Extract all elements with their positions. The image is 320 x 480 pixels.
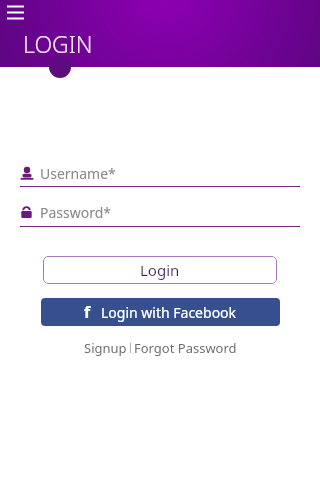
staticText: Forgot Password [134, 339, 237, 357]
staticText: f [84, 301, 91, 323]
button[interactable]: Menu [3, 1, 31, 29]
button[interactable]: Signup [84, 339, 127, 357]
button[interactable]: Forgot Password [134, 339, 237, 357]
button[interactable]: Password* [20, 199, 300, 225]
staticText: Login [140, 260, 180, 280]
staticText: LOGIN [23, 28, 93, 59]
button[interactable]: Login [43, 256, 277, 284]
button[interactable]: Username* [20, 160, 300, 186]
staticText: Login with Facebook [101, 303, 237, 322]
staticText: Username* [40, 164, 116, 183]
staticText: Password* [40, 203, 112, 222]
staticText: Signup [84, 339, 127, 357]
button[interactable]: f [41, 298, 280, 326]
